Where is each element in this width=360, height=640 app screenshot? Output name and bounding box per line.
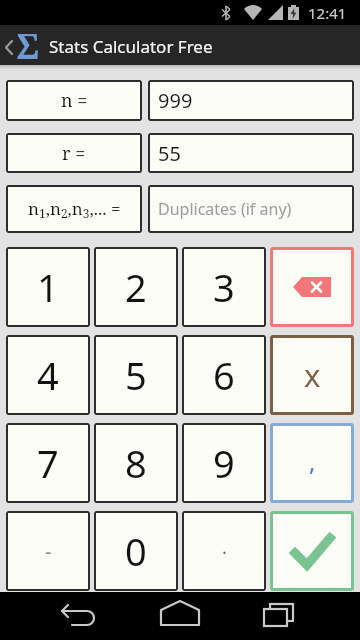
button[interactable]: 2 bbox=[94, 247, 178, 327]
button[interactable] bbox=[270, 247, 354, 327]
staticText: 8 bbox=[125, 437, 147, 489]
button[interactable]: 55 bbox=[148, 133, 354, 173]
staticText: Σ bbox=[16, 22, 40, 62]
staticText: Stats Calculator Free bbox=[49, 35, 213, 58]
staticText: Duplicates (if any) bbox=[158, 198, 292, 220]
staticText: 6 bbox=[213, 349, 235, 401]
staticText: x bbox=[304, 354, 321, 396]
button[interactable]: . bbox=[182, 511, 266, 591]
button[interactable]: 9 bbox=[182, 423, 266, 503]
button[interactable]: Σ bbox=[0, 25, 360, 65]
staticText: n1,n2,n3,... = bbox=[28, 197, 121, 222]
button[interactable]: n1,n2,n3,... = bbox=[6, 185, 142, 233]
staticText: 1 bbox=[37, 261, 59, 313]
button[interactable]: r = bbox=[6, 133, 142, 173]
button[interactable]: x bbox=[270, 335, 354, 415]
button[interactable] bbox=[156, 592, 204, 640]
staticText: n = bbox=[61, 88, 88, 113]
button[interactable] bbox=[270, 511, 354, 591]
button[interactable]: 999 bbox=[148, 80, 354, 121]
staticText: 0 bbox=[125, 525, 147, 577]
button[interactable]: 4 bbox=[6, 335, 90, 415]
button[interactable]: , bbox=[270, 423, 354, 503]
button[interactable]: 8 bbox=[94, 423, 178, 503]
staticText: - bbox=[45, 538, 52, 565]
staticText: , bbox=[309, 445, 316, 478]
button[interactable] bbox=[253, 592, 301, 640]
staticText: 5 bbox=[125, 349, 147, 401]
staticText: 55 bbox=[158, 140, 181, 167]
staticText: 7 bbox=[37, 437, 59, 489]
button[interactable]: 6 bbox=[182, 335, 266, 415]
staticText: 2 bbox=[125, 261, 147, 313]
staticText: 4 bbox=[37, 349, 59, 401]
staticText: 3 bbox=[213, 261, 235, 313]
button[interactable]: 3 bbox=[182, 247, 266, 327]
button[interactable]: - bbox=[6, 511, 90, 591]
button[interactable]: 0 bbox=[94, 511, 178, 591]
button[interactable]: 7 bbox=[6, 423, 90, 503]
button[interactable]: n = bbox=[6, 80, 142, 121]
staticText: 9 bbox=[213, 437, 235, 489]
staticText: r = bbox=[62, 141, 86, 166]
button[interactable]: 1 bbox=[6, 247, 90, 327]
staticText: 12:41 bbox=[308, 3, 347, 23]
button[interactable]: 5 bbox=[94, 335, 178, 415]
staticText: 999 bbox=[158, 87, 193, 114]
button[interactable]: Duplicates (if any) bbox=[148, 185, 354, 233]
staticText: . bbox=[222, 535, 227, 560]
button[interactable] bbox=[56, 592, 104, 640]
